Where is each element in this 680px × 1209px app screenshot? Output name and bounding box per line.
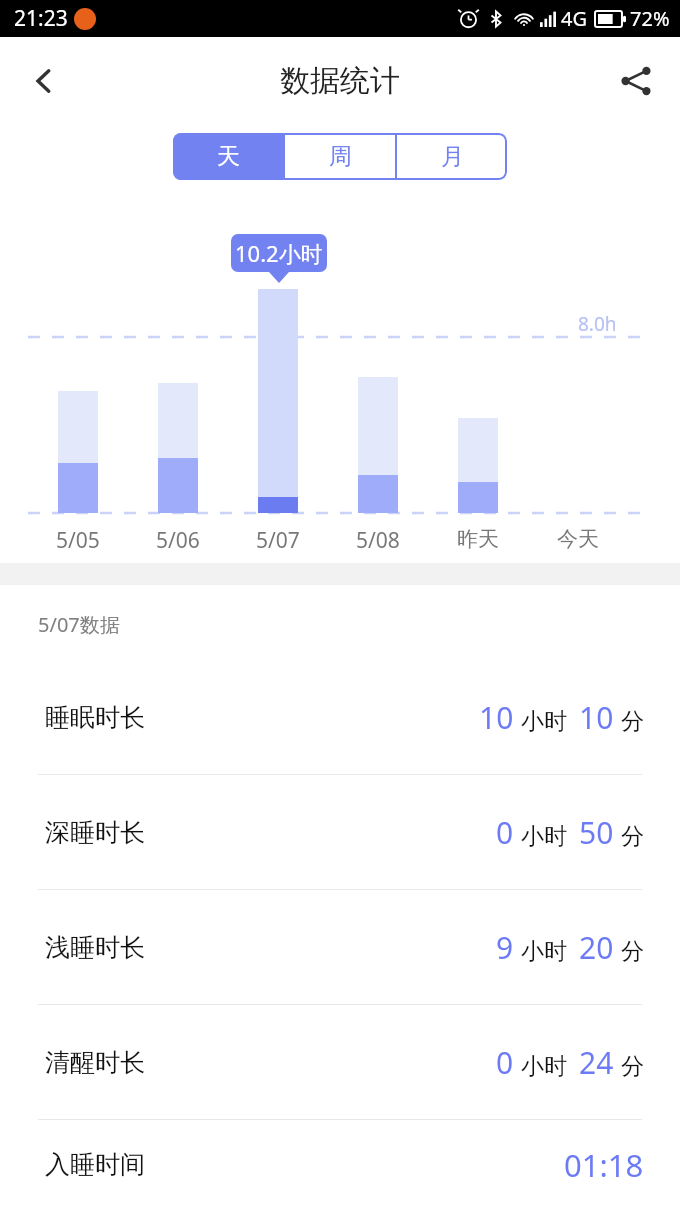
button[interactable]: 周 (285, 133, 395, 180)
button[interactable]: Back (14, 51, 74, 111)
staticText: 5/08 (356, 526, 400, 555)
button[interactable]: Share (606, 51, 666, 111)
staticText: 小时 (521, 822, 567, 851)
staticText: 72% (630, 5, 670, 32)
staticText: 分 (621, 822, 644, 851)
button[interactable]: 浅睡时长 (0, 890, 680, 1004)
staticText: 深睡时长 (45, 817, 145, 848)
button[interactable]: 清醒时长 (0, 1005, 680, 1119)
staticText: 分 (621, 937, 644, 966)
staticText: 5/05 (56, 526, 100, 555)
staticText: 0 (496, 1042, 514, 1083)
staticText: 10 (579, 697, 614, 738)
staticText: 4G (561, 5, 587, 32)
staticText: 入睡时间 (45, 1149, 145, 1180)
staticText: 10 (479, 697, 514, 738)
staticText: 21:23 (14, 4, 68, 33)
staticText: 5/07 (256, 526, 300, 555)
button[interactable]: 天 (173, 133, 283, 180)
button[interactable]: 月 (397, 133, 507, 180)
staticText: 天 (217, 142, 240, 171)
staticText: 月 (441, 142, 464, 171)
staticText: 小时 (521, 707, 567, 736)
staticText: 5/06 (156, 526, 200, 555)
staticText: 小时 (521, 937, 567, 966)
staticText: 10.2小时 (235, 238, 323, 268)
button[interactable]: 入睡时间 (0, 1120, 680, 1209)
staticText: 50 (579, 812, 614, 853)
staticText: 0 (496, 812, 514, 853)
staticText: 5/07数据 (38, 611, 120, 638)
staticText: 周 (329, 142, 352, 171)
staticText: 今天 (557, 526, 599, 552)
staticText: 01:18 (564, 1144, 644, 1186)
staticText: 小时 (521, 1052, 567, 1081)
staticText: 数据统计 (280, 62, 400, 100)
staticText: 浅睡时长 (45, 932, 145, 963)
button[interactable]: 睡眠时长 (0, 660, 680, 774)
staticText: 睡眠时长 (45, 702, 145, 733)
button[interactable]: 深睡时长 (0, 775, 680, 889)
staticText: 24 (579, 1042, 614, 1083)
staticText: 分 (621, 707, 644, 736)
staticText: 8.0h (578, 311, 617, 337)
staticText: 昨天 (457, 526, 499, 552)
staticText: 9 (496, 927, 514, 968)
staticText: 分 (621, 1052, 644, 1081)
staticText: 清醒时长 (45, 1047, 145, 1078)
staticText: 20 (579, 927, 614, 968)
